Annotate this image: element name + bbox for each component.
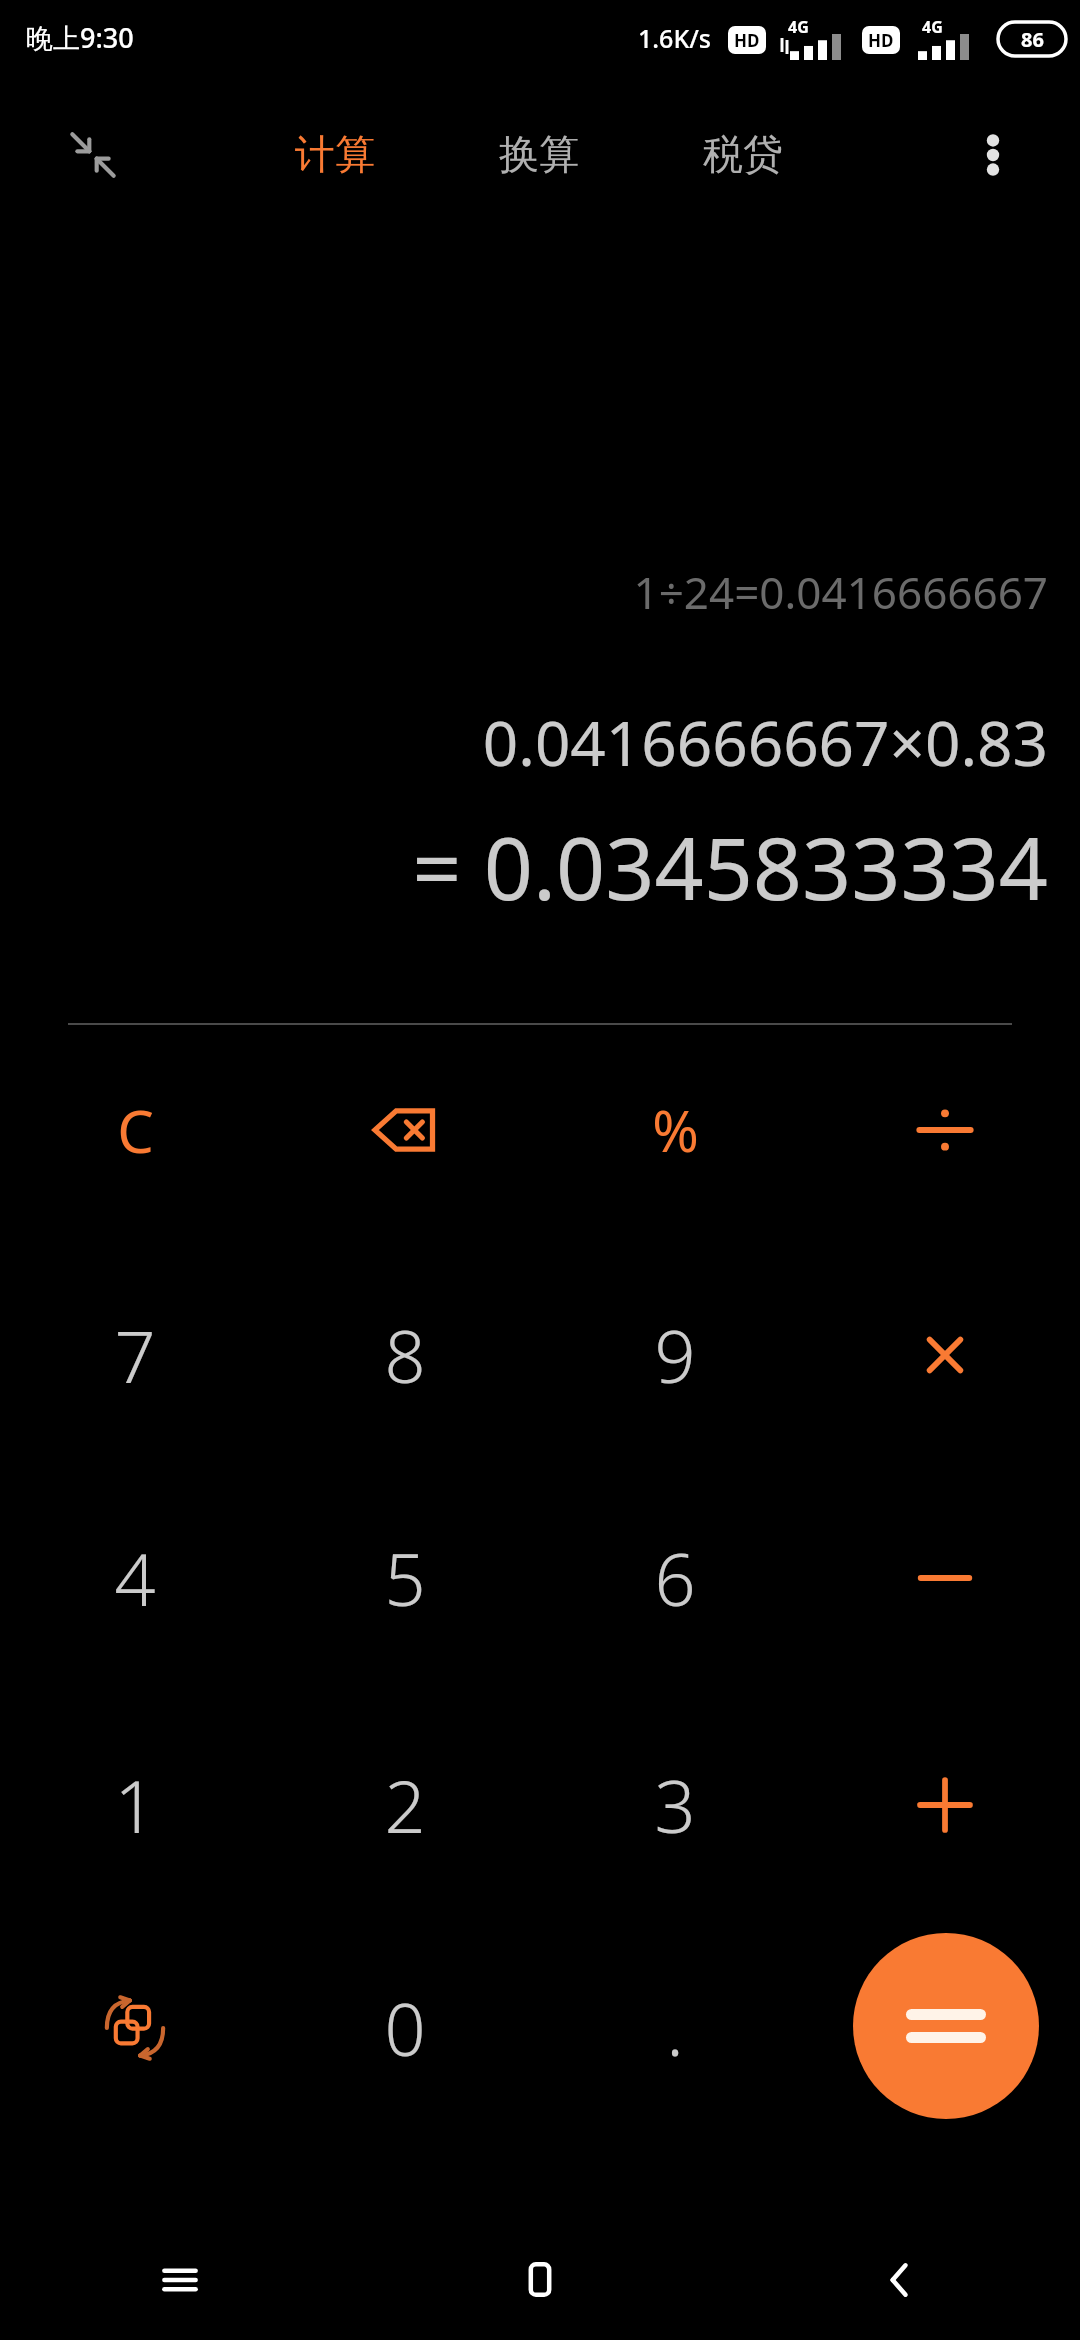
button[interactable]: 2 (270, 1729, 540, 1881)
staticText: 税贷 (703, 129, 783, 179)
staticText: 1÷24=0.0416666667 (633, 562, 1048, 622)
button[interactable]: Plus (810, 1729, 1080, 1881)
staticText: HD (734, 29, 760, 52)
button[interactable]: Multiply (810, 1279, 1080, 1431)
button[interactable]: 0 (270, 1952, 540, 2104)
button[interactable]: Collapse (48, 110, 138, 200)
staticText: 换算 (499, 129, 579, 179)
staticText: % (652, 1092, 699, 1168)
button[interactable]: . (540, 1952, 810, 2104)
staticText: 4G (922, 16, 943, 38)
staticText: 1.6K/s (638, 21, 711, 55)
staticText: HD (868, 29, 894, 52)
button[interactable]: C (0, 1054, 270, 1206)
staticText: 86 (1021, 26, 1044, 53)
button[interactable]: 6 (540, 1502, 810, 1654)
button[interactable]: Back (720, 2220, 1080, 2340)
button[interactable]: Minus (810, 1502, 1080, 1654)
button[interactable]: 7 (0, 1279, 270, 1431)
button[interactable]: Convert units (0, 1952, 270, 2104)
button[interactable]: Backspace (270, 1054, 540, 1206)
staticText: 4 (114, 1529, 156, 1627)
button[interactable]: 9 (540, 1279, 810, 1431)
button[interactable]: 4 (0, 1502, 270, 1654)
button[interactable]: 5 (270, 1502, 540, 1654)
staticText: 2 (384, 1756, 426, 1854)
staticText: 8 (384, 1306, 426, 1404)
staticText: 1 (114, 1756, 156, 1854)
staticText: = 0.0345833334 (412, 808, 1048, 925)
staticText: 0.0416666667×0.83 (482, 700, 1048, 784)
button[interactable]: 1 (0, 1729, 270, 1881)
staticText: 4G (788, 16, 809, 38)
button[interactable]: 计算 (258, 106, 412, 202)
button[interactable]: Equals (853, 1933, 1039, 2119)
staticText: 晚上9:30 (26, 19, 134, 56)
button[interactable]: Home (360, 2220, 720, 2340)
button[interactable]: % (540, 1054, 810, 1206)
button[interactable]: 换算 (462, 106, 616, 202)
staticText: 0 (384, 1979, 426, 2077)
staticText: 9 (654, 1306, 696, 1404)
staticText: . (666, 1979, 684, 2077)
staticText: 7 (114, 1306, 156, 1404)
button[interactable]: 8 (270, 1279, 540, 1431)
staticText: C (117, 1091, 154, 1170)
staticText: 6 (654, 1529, 696, 1627)
button[interactable]: 3 (540, 1729, 810, 1881)
button[interactable]: Recent apps (0, 2220, 360, 2340)
staticText: 3 (654, 1756, 696, 1854)
staticText: 5 (384, 1529, 426, 1627)
staticText: 计算 (295, 129, 375, 179)
button[interactable]: More options (948, 110, 1038, 200)
button[interactable]: Divide (810, 1054, 1080, 1206)
button[interactable]: 税贷 (666, 106, 820, 202)
